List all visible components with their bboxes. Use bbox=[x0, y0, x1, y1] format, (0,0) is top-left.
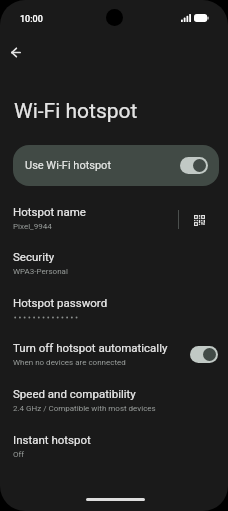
staticText: Hotspot name bbox=[13, 205, 86, 218]
button[interactable]: Toggle bbox=[180, 157, 208, 174]
staticText: 2.4 GHz / Compatible with most devices bbox=[13, 404, 156, 413]
staticText: Pixel_9944 bbox=[13, 222, 52, 231]
staticText: Use Wi-Fi hotspot bbox=[25, 159, 111, 172]
staticText: WPA3-Personal bbox=[13, 267, 68, 276]
staticText: Off bbox=[13, 450, 25, 459]
staticText: When no devices are connected bbox=[13, 358, 126, 367]
staticText: Wi-Fi hotspot bbox=[14, 99, 138, 124]
button[interactable]: Share hotspot QR code bbox=[190, 211, 208, 229]
staticText: Speed and compatibility bbox=[13, 387, 136, 400]
button[interactable]: Use Wi-Fi hotspot bbox=[13, 145, 219, 186]
button[interactable]: Instant hotspot bbox=[0, 423, 228, 468]
staticText: Security bbox=[13, 250, 55, 263]
button[interactable]: Speed and compatibility bbox=[0, 377, 228, 423]
button[interactable]: Back bbox=[2, 38, 30, 66]
staticText: Turn off hotspot automatically bbox=[13, 341, 168, 354]
button[interactable]: Toggle bbox=[190, 346, 218, 363]
button[interactable]: Turn off hotspot automatically bbox=[0, 331, 228, 377]
button[interactable]: Hotspot name bbox=[0, 195, 228, 240]
button[interactable]: Hotspot password bbox=[0, 286, 228, 331]
staticText: Instant hotspot bbox=[13, 433, 91, 446]
staticText: 10:00 bbox=[20, 14, 43, 25]
button[interactable]: Security bbox=[0, 240, 228, 286]
staticText: Hotspot password bbox=[13, 296, 108, 309]
